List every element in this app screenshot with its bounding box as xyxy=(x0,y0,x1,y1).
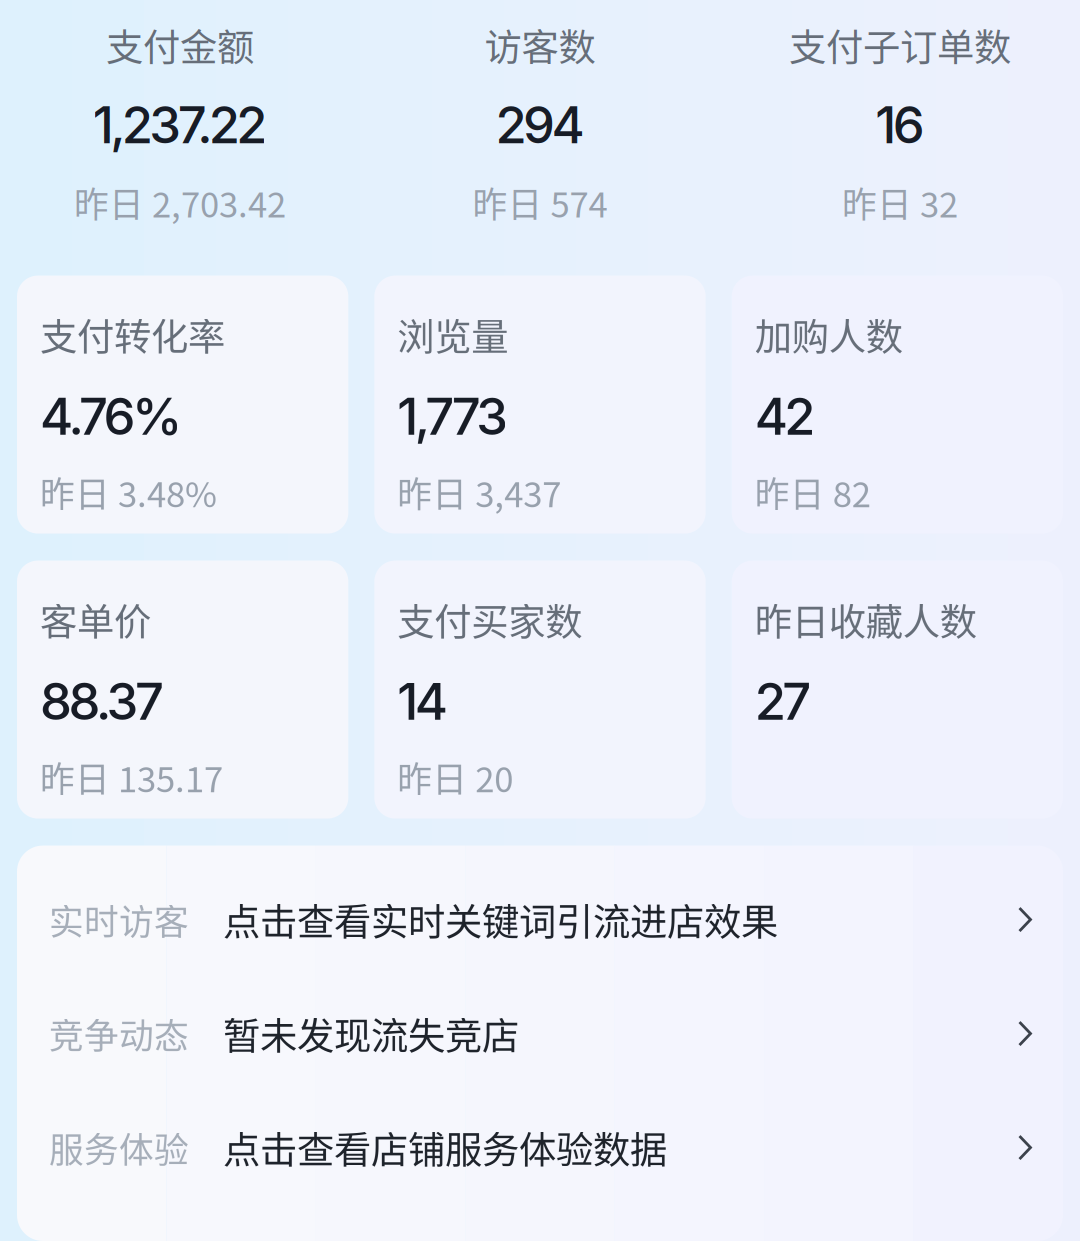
button[interactable]: 实时访客 xyxy=(17,863,1063,977)
staticText: 支付转化率 xyxy=(40,308,225,362)
staticText: 点击查看店铺服务体验数据 xyxy=(223,1120,667,1175)
staticText: 昨日 574 xyxy=(472,177,607,228)
staticText: 服务体验 xyxy=(49,1122,189,1173)
staticText: 昨日 82 xyxy=(755,467,871,517)
staticText: 88.37 xyxy=(40,671,164,732)
staticText: 1,237.22 xyxy=(93,94,267,155)
staticText: 支付买家数 xyxy=(397,593,582,647)
staticText: 昨日 3.48% xyxy=(40,467,217,517)
staticText: 4.76% xyxy=(40,386,182,447)
staticText: 294 xyxy=(495,94,584,155)
staticText: 浏览量 xyxy=(397,308,508,362)
staticText: 16 xyxy=(875,94,925,155)
staticText: 暂未发现流失竞店 xyxy=(223,1006,519,1061)
staticText: 支付金额 xyxy=(106,18,254,72)
button[interactable]: 服务体验 xyxy=(17,1091,1063,1205)
staticText: 昨日 32 xyxy=(842,177,958,228)
staticText: 昨日收藏人数 xyxy=(755,593,977,647)
staticText: 点击查看实时关键词引流进店效果 xyxy=(223,892,778,947)
staticText: 昨日 135.17 xyxy=(40,752,223,802)
staticText: 竞争动态 xyxy=(49,1008,189,1059)
staticText: 昨日 2,703.42 xyxy=(74,177,286,228)
staticText: 实时访客 xyxy=(49,894,189,945)
staticText: 支付子订单数 xyxy=(789,18,1011,72)
staticText: 42 xyxy=(755,386,815,447)
staticText: 14 xyxy=(397,671,448,732)
staticText: 加购人数 xyxy=(755,308,903,362)
staticText: 27 xyxy=(755,671,811,732)
staticText: 客单价 xyxy=(40,593,151,647)
staticText: 访客数 xyxy=(484,18,595,72)
staticText: 昨日 3,437 xyxy=(397,467,561,517)
button[interactable]: 竞争动态 xyxy=(17,977,1063,1091)
staticText: 1,773 xyxy=(397,386,508,447)
staticText: 昨日 20 xyxy=(397,752,513,802)
